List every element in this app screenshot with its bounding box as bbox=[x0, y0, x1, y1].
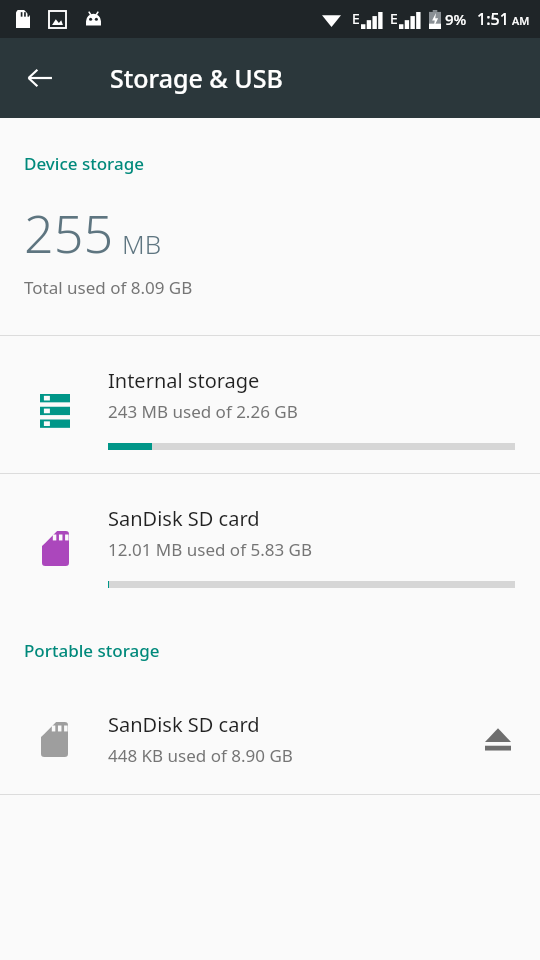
staticText: E bbox=[352, 9, 360, 28]
staticText: 243 MB used of 2.26 GB bbox=[108, 400, 298, 423]
staticText: Device storage bbox=[24, 152, 144, 175]
staticText: E bbox=[390, 9, 398, 28]
staticText: 255 bbox=[24, 197, 114, 268]
staticText: SanDisk SD card bbox=[108, 711, 260, 738]
button[interactable]: Internal storage bbox=[0, 336, 540, 473]
staticText: MB bbox=[122, 226, 162, 261]
button[interactable]: SanDisk SD card bbox=[0, 474, 540, 611]
staticText: 12.01 MB used of 5.83 GB bbox=[108, 538, 312, 561]
staticText: Portable storage bbox=[24, 639, 160, 662]
button[interactable]: Back bbox=[10, 48, 70, 108]
button[interactable]: SanDisk SD card bbox=[0, 684, 540, 794]
staticText: 1:51 bbox=[477, 8, 509, 30]
staticText: 9% bbox=[445, 9, 467, 29]
button[interactable]: Eject bbox=[456, 697, 540, 781]
staticText: Storage & USB bbox=[110, 61, 283, 95]
staticText: Internal storage bbox=[108, 367, 260, 394]
staticText: 448 KB used of 8.90 GB bbox=[108, 744, 293, 767]
staticText: SanDisk SD card bbox=[108, 505, 260, 532]
staticText: AM bbox=[512, 13, 530, 28]
staticText: Total used of 8.09 GB bbox=[24, 276, 193, 299]
